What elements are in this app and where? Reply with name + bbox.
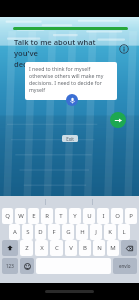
button[interactable]: M <box>107 240 119 256</box>
staticText: I <box>102 212 105 220</box>
staticText: W <box>18 212 24 220</box>
staticText: K <box>108 228 112 236</box>
staticText: E <box>32 212 36 220</box>
staticText: F <box>52 228 56 236</box>
staticText: V <box>69 244 73 252</box>
staticText: A <box>13 228 17 236</box>
button[interactable]: C <box>50 240 63 256</box>
staticText: L <box>122 228 126 236</box>
staticText: H <box>80 228 85 236</box>
staticText: B <box>83 244 87 252</box>
button[interactable]: I need to think for myself otherwise oth… <box>25 62 117 100</box>
staticText: P <box>129 212 133 220</box>
staticText: R <box>45 212 49 220</box>
staticText: Talk to me about what you've decided to … <box>14 37 117 69</box>
staticText: Exit <box>66 136 74 142</box>
button[interactable]: H <box>76 224 88 240</box>
staticText: Y <box>73 212 77 220</box>
staticText: envío <box>119 263 131 269</box>
button[interactable]: Backspace <box>121 240 137 256</box>
button[interactable]: Q <box>2 208 13 224</box>
staticText: O <box>115 212 120 220</box>
button[interactable]: E <box>28 208 39 224</box>
staticText: Q <box>5 212 10 220</box>
button[interactable]: O <box>111 208 123 224</box>
staticText: T <box>59 212 63 220</box>
staticText: G <box>66 228 71 236</box>
button[interactable]: Shift <box>2 240 18 256</box>
staticText: 123 <box>6 263 14 269</box>
button[interactable]: P <box>125 208 137 224</box>
button[interactable]: Voice input <box>66 94 78 106</box>
staticText: D <box>38 228 43 236</box>
button[interactable]: Z <box>20 240 33 256</box>
button[interactable]: D <box>35 224 46 240</box>
staticText: S <box>26 228 30 236</box>
button[interactable]: T <box>55 208 67 224</box>
button[interactable]: V <box>65 240 77 256</box>
staticText: I need to think for myself otherwise oth… <box>29 65 113 93</box>
button[interactable]: Exit <box>62 135 78 142</box>
button[interactable]: Emoji <box>20 258 34 274</box>
staticText: M <box>110 244 116 252</box>
staticText: J <box>95 228 97 236</box>
button[interactable]: Next <box>110 112 126 128</box>
button[interactable]: U <box>83 208 95 224</box>
button[interactable]: F <box>48 224 60 240</box>
button[interactable]: B <box>79 240 91 256</box>
button[interactable]: N <box>93 240 105 256</box>
button[interactable]: X <box>35 240 48 256</box>
staticText: C <box>55 244 59 252</box>
staticText: Z <box>25 244 29 252</box>
button[interactable]: Information <box>119 44 129 54</box>
button[interactable]: W <box>15 208 26 224</box>
button[interactable]: 123 <box>2 258 18 274</box>
staticText: N <box>97 244 102 252</box>
button[interactable]: K <box>104 224 116 240</box>
button[interactable]: Y <box>69 208 81 224</box>
button[interactable]: I <box>97 208 109 224</box>
staticText: X <box>40 244 44 252</box>
button[interactable]: S <box>22 224 33 240</box>
staticText: U <box>87 212 92 220</box>
button[interactable]: A <box>9 224 20 240</box>
button[interactable]: R <box>41 208 53 224</box>
button[interactable]: L <box>118 224 130 240</box>
button[interactable]: G <box>62 224 74 240</box>
button[interactable]: envío <box>113 258 137 274</box>
button[interactable]: J <box>90 224 102 240</box>
